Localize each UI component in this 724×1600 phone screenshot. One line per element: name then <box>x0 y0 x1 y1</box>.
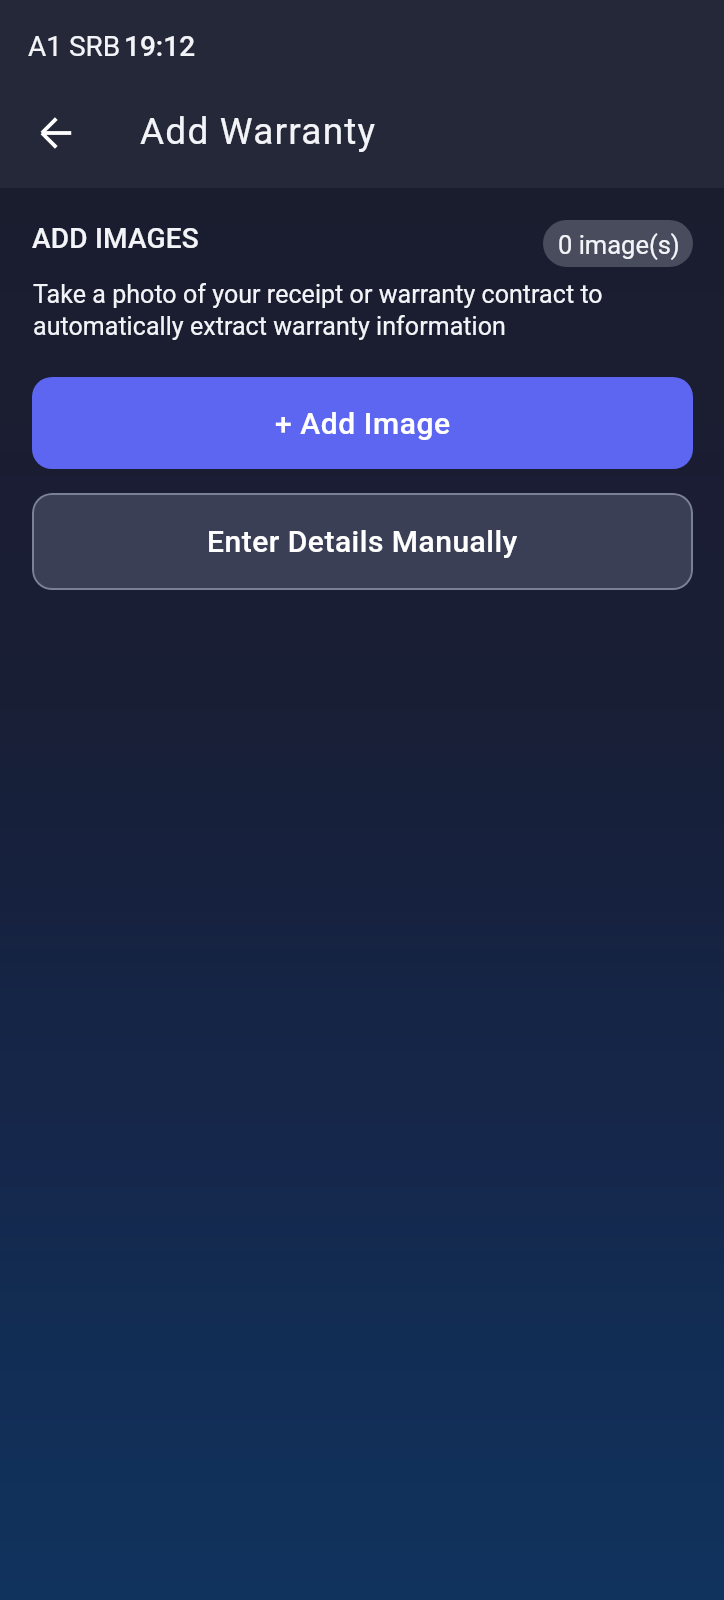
staticText: + Add Image <box>275 406 451 441</box>
staticText: Enter Details Manually <box>207 524 518 559</box>
button[interactable]: + Add Image <box>32 377 693 469</box>
button[interactable]: Enter Details Manually <box>32 493 693 590</box>
button[interactable]: Back <box>24 109 88 157</box>
staticText: 0 image(s) <box>558 230 680 260</box>
staticText: A1 SRB <box>28 30 121 63</box>
staticText: ADD IMAGES <box>32 222 199 255</box>
staticText: Take a photo of your receipt or warranty… <box>33 280 653 341</box>
staticText: Add Warranty <box>140 110 377 153</box>
button[interactable]: 0 image(s) <box>543 220 693 267</box>
staticText: 19:12 <box>124 30 196 63</box>
